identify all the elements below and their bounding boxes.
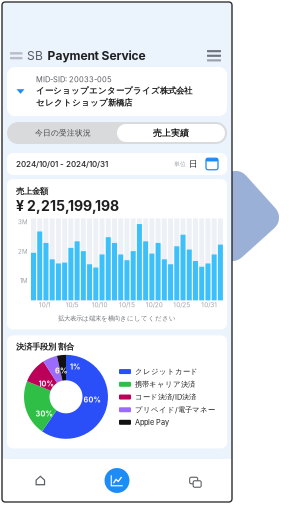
- button[interactable]: MID-SID: 20033-005: [7, 67, 227, 116]
- staticText: 決済手段別 割合: [16, 341, 74, 352]
- staticText: イーショップエンタープライズ株式会社: [36, 85, 192, 96]
- button[interactable]: Sales: [79, 459, 155, 502]
- staticText: 10/1: [39, 301, 51, 309]
- staticText: MID-SID: 20033-005: [36, 75, 112, 84]
- staticText: コード決済/ID決済: [135, 392, 196, 402]
- staticText: 1M: [20, 277, 28, 284]
- staticText: クレジットカード: [135, 367, 198, 376]
- staticText: 売上実績: [153, 127, 189, 139]
- staticText: 拡大表示は端末を横向きにしてください: [58, 314, 176, 322]
- staticText: 6%: [55, 366, 67, 375]
- staticText: 2M: [18, 248, 28, 255]
- staticText: 30%: [35, 409, 52, 418]
- staticText: SB: [27, 48, 43, 63]
- staticText: 10/10: [91, 301, 107, 309]
- staticText: 今日の受注状況: [35, 128, 91, 138]
- staticText: セレクトショップ新橋店: [36, 97, 132, 108]
- button[interactable]: SB: [10, 44, 145, 67]
- staticText: 携帯キャリア決済: [135, 380, 195, 389]
- staticText: 60%: [83, 395, 100, 404]
- button[interactable]: Transactions: [155, 459, 232, 502]
- staticText: Apple Pay: [135, 418, 169, 427]
- staticText: 10/20: [146, 301, 163, 309]
- staticText: 売上金額: [16, 186, 48, 196]
- staticText: 1%: [70, 362, 80, 371]
- staticText: 3M: [18, 218, 28, 226]
- button[interactable]: 売上実績: [117, 124, 225, 142]
- button[interactable]: 今日の受注状況: [9, 124, 117, 142]
- staticText: 単位: [174, 160, 186, 168]
- button[interactable]: Select date range: [206, 157, 218, 170]
- staticText: Payment Service: [47, 48, 145, 63]
- staticText: 10%: [38, 379, 53, 388]
- button[interactable]: Home: [2, 459, 79, 502]
- staticText: 10/5: [66, 301, 79, 309]
- staticText: 日: [189, 159, 198, 169]
- staticText: 10/25: [173, 301, 190, 309]
- staticText: プリペイド/電子マネー: [135, 405, 215, 414]
- staticText: 10/31: [201, 301, 217, 309]
- button[interactable]: Menu: [205, 48, 223, 64]
- staticText: 2024/10/01 - 2024/10/31: [16, 159, 108, 169]
- staticText: ¥ 2,215,199,198: [16, 197, 119, 214]
- staticText: 10/15: [119, 301, 135, 309]
